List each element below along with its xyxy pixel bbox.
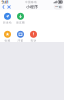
staticText: 收藏 <box>4 39 10 42</box>
button[interactable]: 朋友圈 <box>14 12 27 24</box>
staticText: 投诉 <box>30 39 36 42</box>
button[interactable]: 收藏 <box>1 30 14 42</box>
button[interactable]: Close <box>7 4 11 10</box>
staticText: ••• <box>55 5 58 9</box>
button[interactable]: Back <box>1 4 5 10</box>
staticText: 小程序 <box>26 4 38 9</box>
staticText: 朋友圈 <box>16 21 25 24</box>
button[interactable]: 投诉 <box>27 30 40 42</box>
staticText: 转发给 <box>3 21 12 24</box>
staticText: 中国移动 <box>25 0 37 4</box>
button[interactable]: 转发给 <box>1 12 14 24</box>
button[interactable]: More options <box>54 5 62 9</box>
staticText: 9:41 <box>1 0 8 5</box>
staticText: 浮窗 <box>17 39 23 42</box>
button[interactable]: 浮窗 <box>14 30 27 42</box>
